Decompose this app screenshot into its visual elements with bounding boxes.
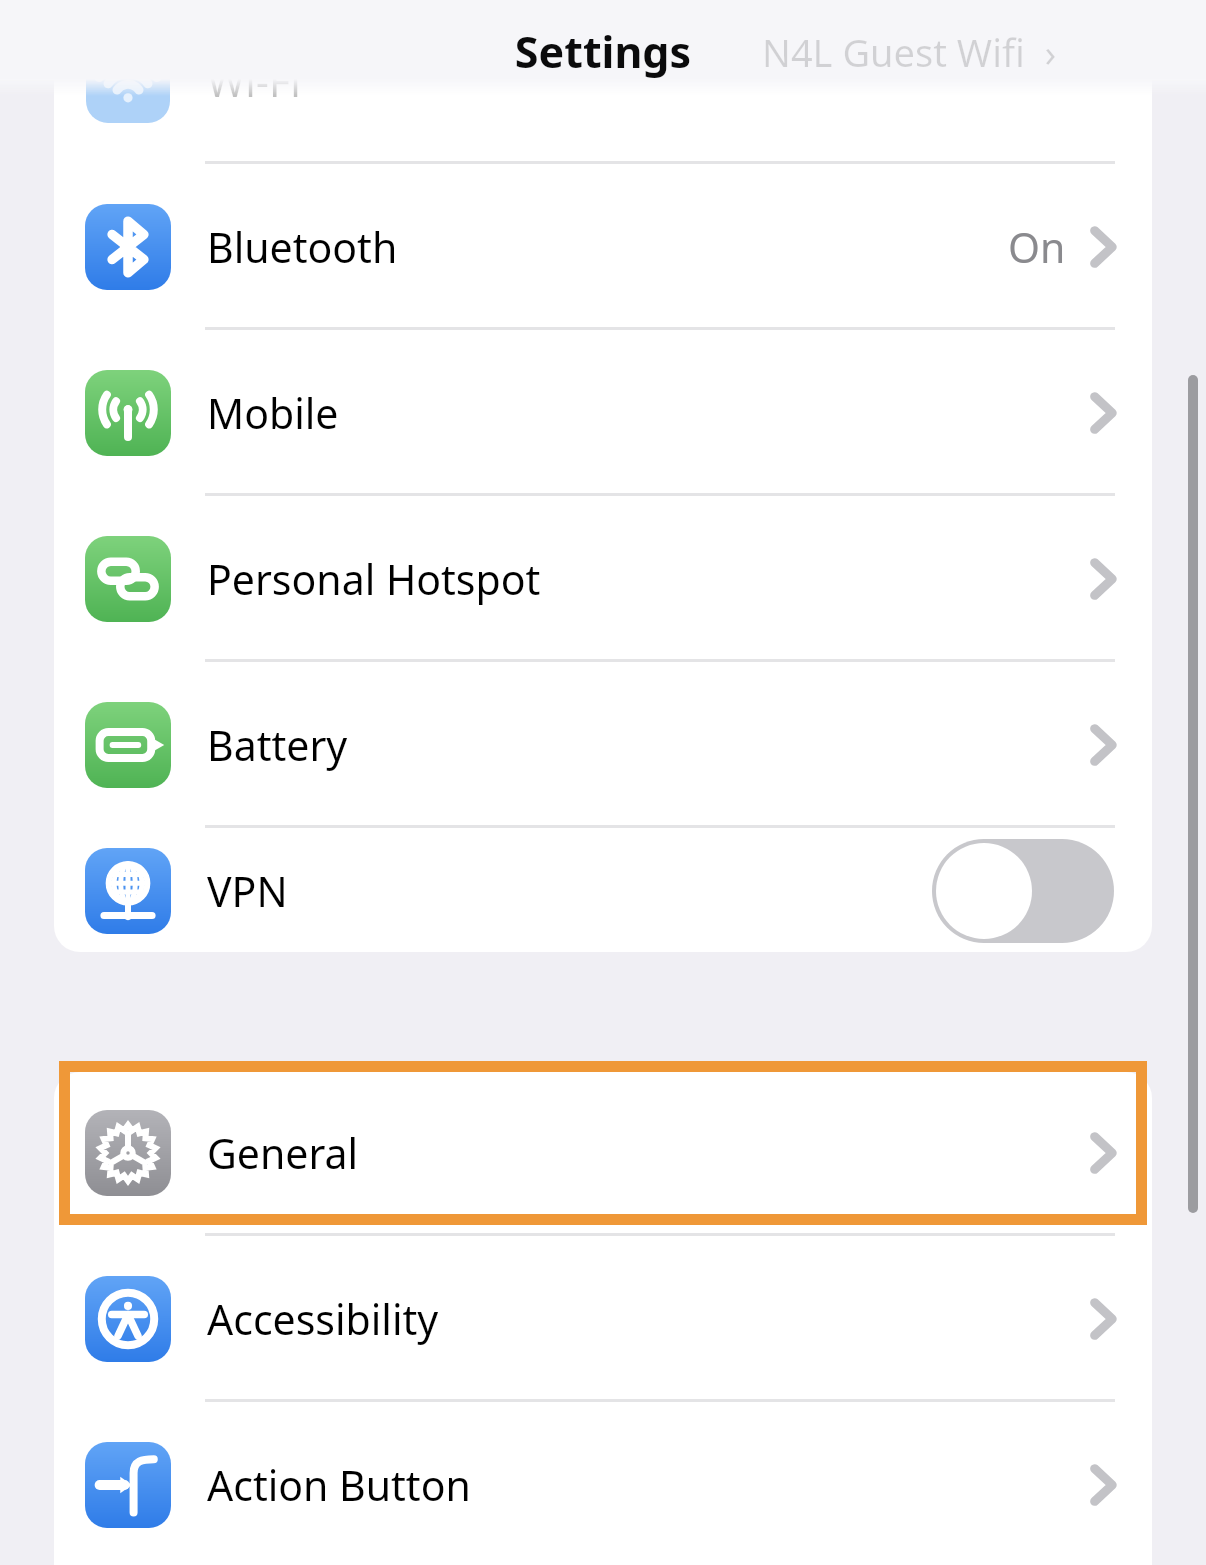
staticText: Wi-Fi [207,53,301,109]
staticText: Bluetooth [207,219,398,275]
staticText: N4L Guest Wifi › [762,26,1057,78]
button[interactable]: Bluetooth [54,166,1152,327]
button[interactable]: Action Button [54,1404,1152,1565]
staticText: Personal Hotspot [207,551,541,607]
staticText: VPN [207,863,288,919]
staticText: Battery [207,717,348,773]
button[interactable]: Accessibility [54,1238,1152,1399]
button[interactable]: VPN toggle, off [932,839,1114,943]
button[interactable]: VPN [54,830,1152,952]
staticText: On [1008,219,1066,275]
button[interactable]: Mobile [54,332,1152,493]
staticText: Accessibility [207,1291,439,1347]
staticText: Settings [0,22,1206,81]
staticText: Mobile [207,385,339,441]
staticText: General [207,1125,359,1181]
staticText: Action Button [207,1457,471,1513]
button[interactable]: Battery [54,664,1152,825]
button[interactable]: Personal Hotspot [54,498,1152,659]
button[interactable]: General [54,1072,1152,1233]
